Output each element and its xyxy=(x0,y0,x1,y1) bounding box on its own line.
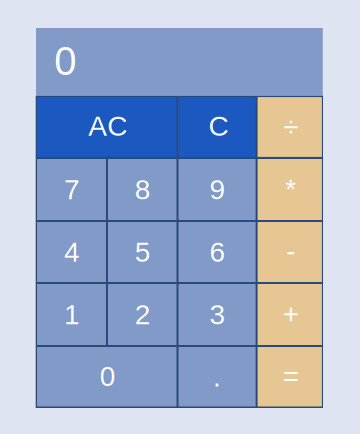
button[interactable]: 2 xyxy=(108,284,176,345)
staticText: + xyxy=(283,298,299,329)
button[interactable]: 4 xyxy=(37,222,106,282)
staticText: * xyxy=(285,173,296,205)
button[interactable]: . xyxy=(178,347,256,406)
button[interactable]: + xyxy=(258,284,322,345)
staticText: AC xyxy=(88,110,127,142)
button[interactable]: AC xyxy=(37,97,176,157)
button[interactable]: 0 xyxy=(37,347,176,406)
staticText: 2 xyxy=(135,299,151,330)
staticText: C xyxy=(209,110,229,142)
button[interactable]: 5 xyxy=(108,222,176,282)
staticText: 8 xyxy=(135,174,151,205)
button[interactable]: ÷ xyxy=(258,97,322,157)
staticText: 1 xyxy=(64,299,80,330)
button[interactable]: * xyxy=(258,159,322,220)
staticText: ÷ xyxy=(283,111,298,142)
button[interactable]: 1 xyxy=(37,284,106,345)
button[interactable]: 9 xyxy=(178,159,256,220)
staticText: 0 xyxy=(54,39,76,83)
staticText: 5 xyxy=(135,236,151,268)
staticText: 4 xyxy=(64,236,80,268)
staticText: 7 xyxy=(64,174,80,205)
staticText: = xyxy=(283,361,299,392)
button[interactable]: = xyxy=(258,347,322,406)
button[interactable]: 6 xyxy=(178,222,256,282)
button[interactable]: C xyxy=(178,97,256,157)
staticText: 6 xyxy=(210,236,226,268)
button[interactable]: 3 xyxy=(178,284,256,345)
staticText: 9 xyxy=(210,174,226,205)
staticText: . xyxy=(213,361,221,392)
staticText: - xyxy=(286,235,295,266)
staticText: 0 xyxy=(100,361,116,392)
staticText: 3 xyxy=(210,299,226,330)
button[interactable]: - xyxy=(258,222,322,282)
button[interactable]: 7 xyxy=(37,159,106,220)
button[interactable]: 8 xyxy=(108,159,176,220)
